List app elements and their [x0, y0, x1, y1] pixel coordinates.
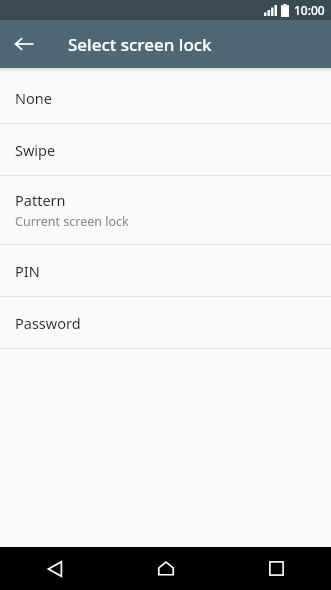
button[interactable]: Back [0, 20, 48, 68]
staticText: None [15, 88, 52, 108]
staticText: Current screen lock [15, 213, 129, 230]
staticText: 10:00 [294, 2, 325, 18]
staticText: Swipe [15, 140, 56, 160]
staticText: PIN [15, 261, 40, 281]
staticText: Password [15, 313, 81, 333]
staticText: Select screen lock [68, 33, 212, 56]
button[interactable]: Password [0, 297, 331, 348]
button[interactable]: PIN [0, 245, 331, 296]
button[interactable]: Recent apps [221, 547, 331, 590]
staticText: Pattern [15, 190, 66, 210]
button[interactable]: Swipe [0, 124, 331, 175]
button[interactable]: Home [111, 547, 221, 590]
button[interactable]: None [0, 72, 331, 123]
button[interactable]: Pattern [0, 176, 331, 244]
button[interactable]: Back [0, 547, 111, 590]
